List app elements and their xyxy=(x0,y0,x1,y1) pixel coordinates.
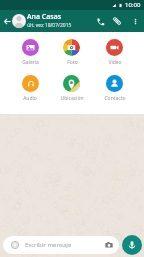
button[interactable] xyxy=(9,34,51,62)
staticText: Galería xyxy=(22,59,39,66)
staticText: Ubicación xyxy=(60,95,84,102)
button[interactable]: Call xyxy=(93,14,107,28)
staticText: Audio xyxy=(23,95,37,102)
staticText: Vídeo xyxy=(108,59,122,66)
staticText: Ana Casas xyxy=(27,12,62,22)
button[interactable] xyxy=(51,69,93,97)
button[interactable] xyxy=(51,34,93,62)
button[interactable]: Contact photo xyxy=(12,14,26,28)
button[interactable]: Attach xyxy=(110,14,124,28)
button[interactable]: Voice message xyxy=(122,235,142,255)
staticText: Foto xyxy=(67,59,78,66)
staticText: Escribir mensaje xyxy=(25,241,72,249)
button[interactable]: More options xyxy=(129,15,141,27)
button[interactable] xyxy=(94,69,136,97)
button[interactable] xyxy=(9,69,51,97)
button[interactable]: Camera xyxy=(103,239,115,251)
staticText: últ. vez 18/07/2015 xyxy=(27,22,72,29)
staticText: Contacto xyxy=(104,95,126,102)
button[interactable]: Back xyxy=(1,15,13,27)
staticText: 10:00 xyxy=(125,1,141,9)
button[interactable] xyxy=(94,34,136,62)
button[interactable]: Escribir mensaje xyxy=(3,236,119,254)
